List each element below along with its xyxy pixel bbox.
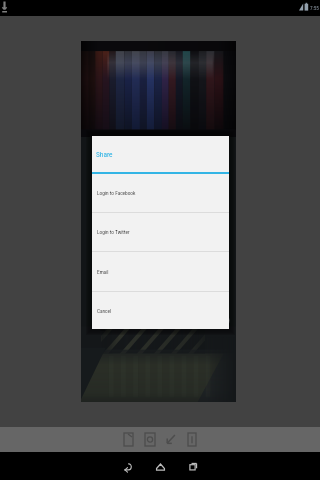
staticText: Email [97,269,109,275]
button[interactable]: Email [92,252,229,291]
button[interactable]: Share [92,136,229,172]
button[interactable]: Login to Facebook [92,174,229,212]
button[interactable]: Share [160,427,181,452]
button[interactable]: Camera [139,427,160,452]
button[interactable]: Home [144,452,177,480]
button[interactable]: Cancel [92,292,229,329]
button[interactable]: Recents [177,452,210,480]
button[interactable]: New note [118,427,139,452]
button[interactable]: Login to Twitter [92,213,229,251]
staticText: Share [96,150,113,159]
staticText: Login to Twitter [97,229,130,235]
staticText: 7:55 [310,5,319,11]
button[interactable]: Delete [181,427,202,452]
staticText: Login to Facebook [97,190,136,196]
button[interactable]: Back [111,452,144,480]
staticText: Cancel [97,308,112,314]
